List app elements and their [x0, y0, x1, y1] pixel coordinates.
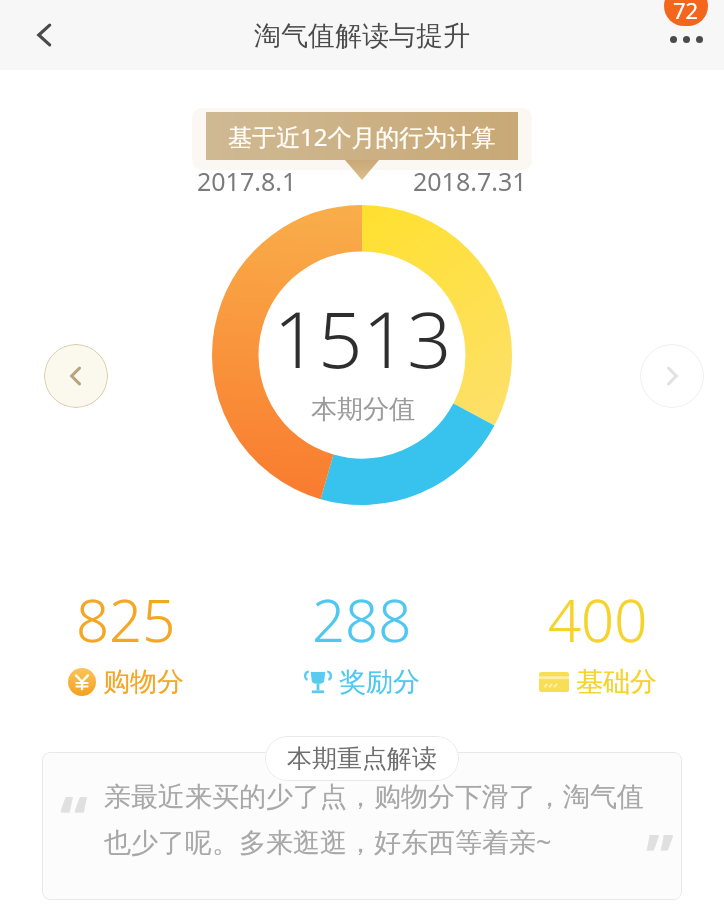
staticText: 本期重点解读 [287, 743, 437, 774]
button[interactable]: 825 [26, 580, 226, 699]
staticText: 2018.7.31 [413, 164, 527, 198]
button[interactable]: Next period [640, 344, 704, 408]
staticText: 288 [312, 580, 412, 659]
staticText: 825 [76, 580, 176, 659]
button[interactable]: 400 [498, 580, 698, 699]
staticText: “ [60, 776, 88, 860]
staticText: 淘气值解读与提升 [254, 19, 470, 53]
staticText: 亲最近来买的少了点，购物分下滑了，淘气值也少了呢。多来逛逛，好东西等着亲~ [104, 780, 648, 860]
button[interactable]: Previous period [44, 344, 108, 408]
staticText: ” [646, 814, 674, 898]
button[interactable]: More options [658, 7, 714, 63]
staticText: 基础分 [576, 665, 657, 699]
staticText: 2017.8.1 [197, 164, 297, 198]
staticText: 购物分 [103, 665, 184, 699]
button[interactable]: Back [18, 8, 72, 62]
staticText: 基于近12个月的行为计算 [228, 120, 496, 153]
staticText: 72 [673, 0, 699, 25]
staticText: 400 [548, 580, 648, 659]
staticText: 本期分值 [311, 393, 415, 426]
staticText: 奖励分 [339, 665, 420, 699]
button[interactable]: 本期重点解读 [287, 743, 437, 774]
staticText: 1513 [273, 285, 452, 391]
button[interactable]: 288 [262, 580, 462, 699]
